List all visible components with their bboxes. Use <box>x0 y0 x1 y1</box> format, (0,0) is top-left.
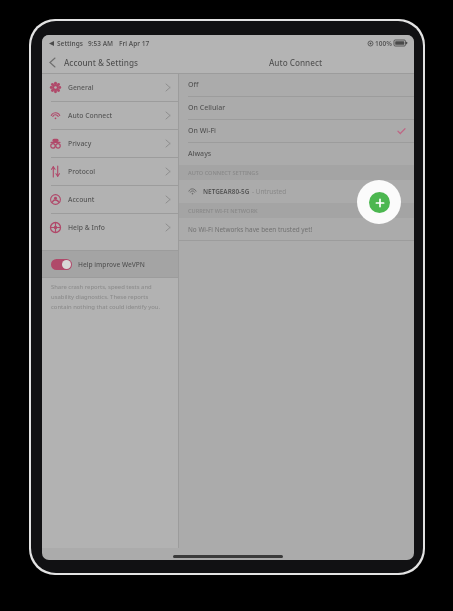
staticText: General <box>68 83 94 92</box>
button[interactable]: Off <box>179 74 414 96</box>
staticText: 100% <box>375 39 392 48</box>
button[interactable]: Back <box>42 51 178 73</box>
button[interactable]: Add network <box>369 192 390 213</box>
staticText: Help improve WeVPN <box>78 260 145 269</box>
other: Back <box>50 58 55 67</box>
staticText: Protocol <box>68 167 96 176</box>
staticText: Account <box>68 195 95 204</box>
button[interactable]: Protocol <box>42 158 178 185</box>
staticText: AUTO CONNECT SETTINGS <box>188 169 259 177</box>
staticText: No Wi-Fi Networks have been trusted yet! <box>188 225 313 234</box>
button[interactable]: Help & Info <box>42 214 178 241</box>
staticText: usability diagnostics. These reports <box>51 293 149 301</box>
staticText: CURRENT WI-FI NETWORK <box>188 207 258 215</box>
button[interactable]: Auto Connect <box>42 102 178 129</box>
staticText: contain nothing that could identify you. <box>51 303 160 311</box>
staticText: - Untrusted <box>252 187 287 196</box>
button[interactable]: On Cellular <box>179 97 414 119</box>
staticText: NETGEAR80-5G <box>203 187 250 196</box>
staticText: 9:53 AM <box>88 39 114 48</box>
staticText: On Cellular <box>188 103 226 113</box>
staticText: Auto Connect <box>269 57 323 68</box>
staticText: Auto Connect <box>68 111 113 120</box>
staticText: Help & Info <box>68 223 105 232</box>
button[interactable]: Always <box>179 143 414 165</box>
staticText: Account & Settings <box>64 57 138 68</box>
button[interactable]: Help improve WeVPN <box>42 251 178 277</box>
staticText: Share crash reports, speed tests and <box>51 283 152 291</box>
button[interactable]: Privacy <box>42 130 178 157</box>
staticText: Settings <box>57 39 83 48</box>
staticText: Off <box>188 80 199 90</box>
button[interactable]: Account <box>42 186 178 213</box>
staticText: Privacy <box>68 139 92 148</box>
button[interactable]: On Wi-Fi <box>179 120 414 142</box>
button[interactable]: NETGEAR80-5G <box>179 180 414 203</box>
button[interactable]: General <box>42 74 178 101</box>
staticText: Fri Apr 17 <box>119 39 150 48</box>
staticText: On Wi-Fi <box>188 126 217 136</box>
staticText: Always <box>188 149 212 159</box>
